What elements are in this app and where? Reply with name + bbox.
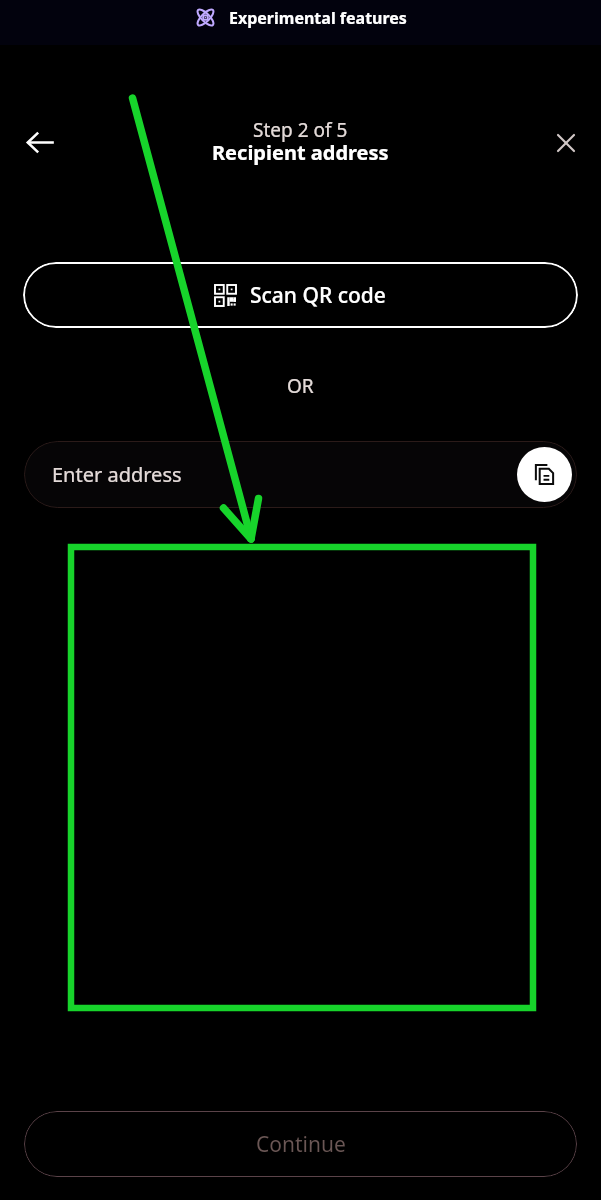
button[interactable]: Close [544, 121, 588, 165]
staticText: Continue [256, 1130, 346, 1159]
staticText: Recipient address [212, 139, 389, 166]
staticText: Experimental features [229, 7, 407, 29]
button[interactable]: Scan QR code [23, 262, 578, 328]
button[interactable]: Paste from clipboard [517, 447, 572, 502]
button[interactable]: Continue [24, 1111, 577, 1177]
button[interactable]: Experimental features [0, 0, 601, 45]
staticText: Scan QR code [250, 281, 386, 310]
staticText: OR [287, 373, 314, 399]
staticText: Step 2 of 5 [253, 117, 348, 143]
button[interactable]: Back [16, 118, 64, 166]
button[interactable]: Enter address [24, 441, 577, 508]
staticText: Enter address [52, 461, 182, 488]
